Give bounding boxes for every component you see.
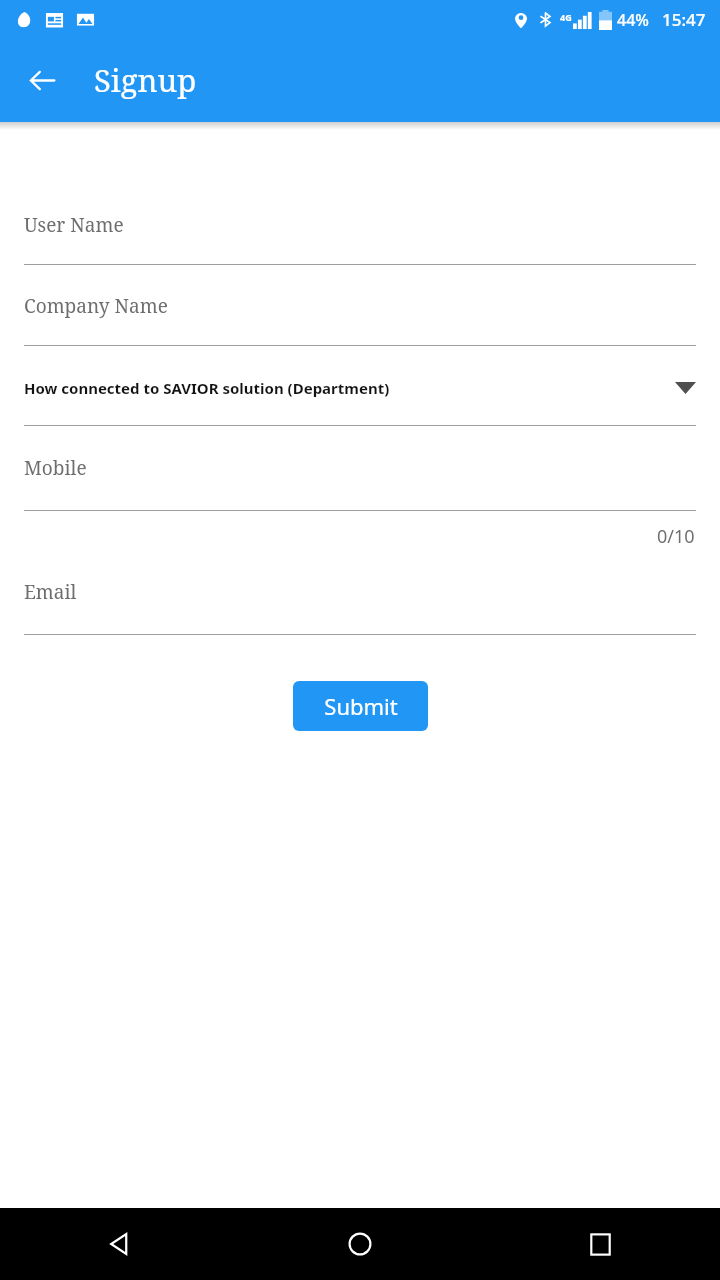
staticText: 4G xyxy=(560,11,572,23)
button[interactable]: Back xyxy=(84,1208,156,1280)
button[interactable]: Submit xyxy=(293,681,428,731)
staticText: Signup xyxy=(94,59,197,101)
staticText: Company Name xyxy=(24,293,168,319)
button[interactable]: Recent apps xyxy=(564,1208,636,1280)
button[interactable]: How connected to SAVIOR solution (Depart… xyxy=(0,366,720,410)
staticText: How connected to SAVIOR solution (Depart… xyxy=(24,378,390,398)
staticText: User Name xyxy=(24,212,124,238)
button[interactable]: Company Name xyxy=(0,284,720,328)
staticText: 0/10 xyxy=(657,524,695,549)
button[interactable]: Home xyxy=(324,1208,396,1280)
button[interactable]: Mobile xyxy=(0,446,720,490)
staticText: Email xyxy=(24,579,77,605)
staticText: 15:47 xyxy=(662,8,706,31)
staticText: Submit xyxy=(324,691,398,721)
staticText: Mobile xyxy=(24,455,87,481)
staticText: 44% xyxy=(617,9,649,31)
button[interactable]: User Name xyxy=(0,203,720,247)
button[interactable]: Email xyxy=(0,570,720,614)
button[interactable]: Back xyxy=(14,52,70,108)
